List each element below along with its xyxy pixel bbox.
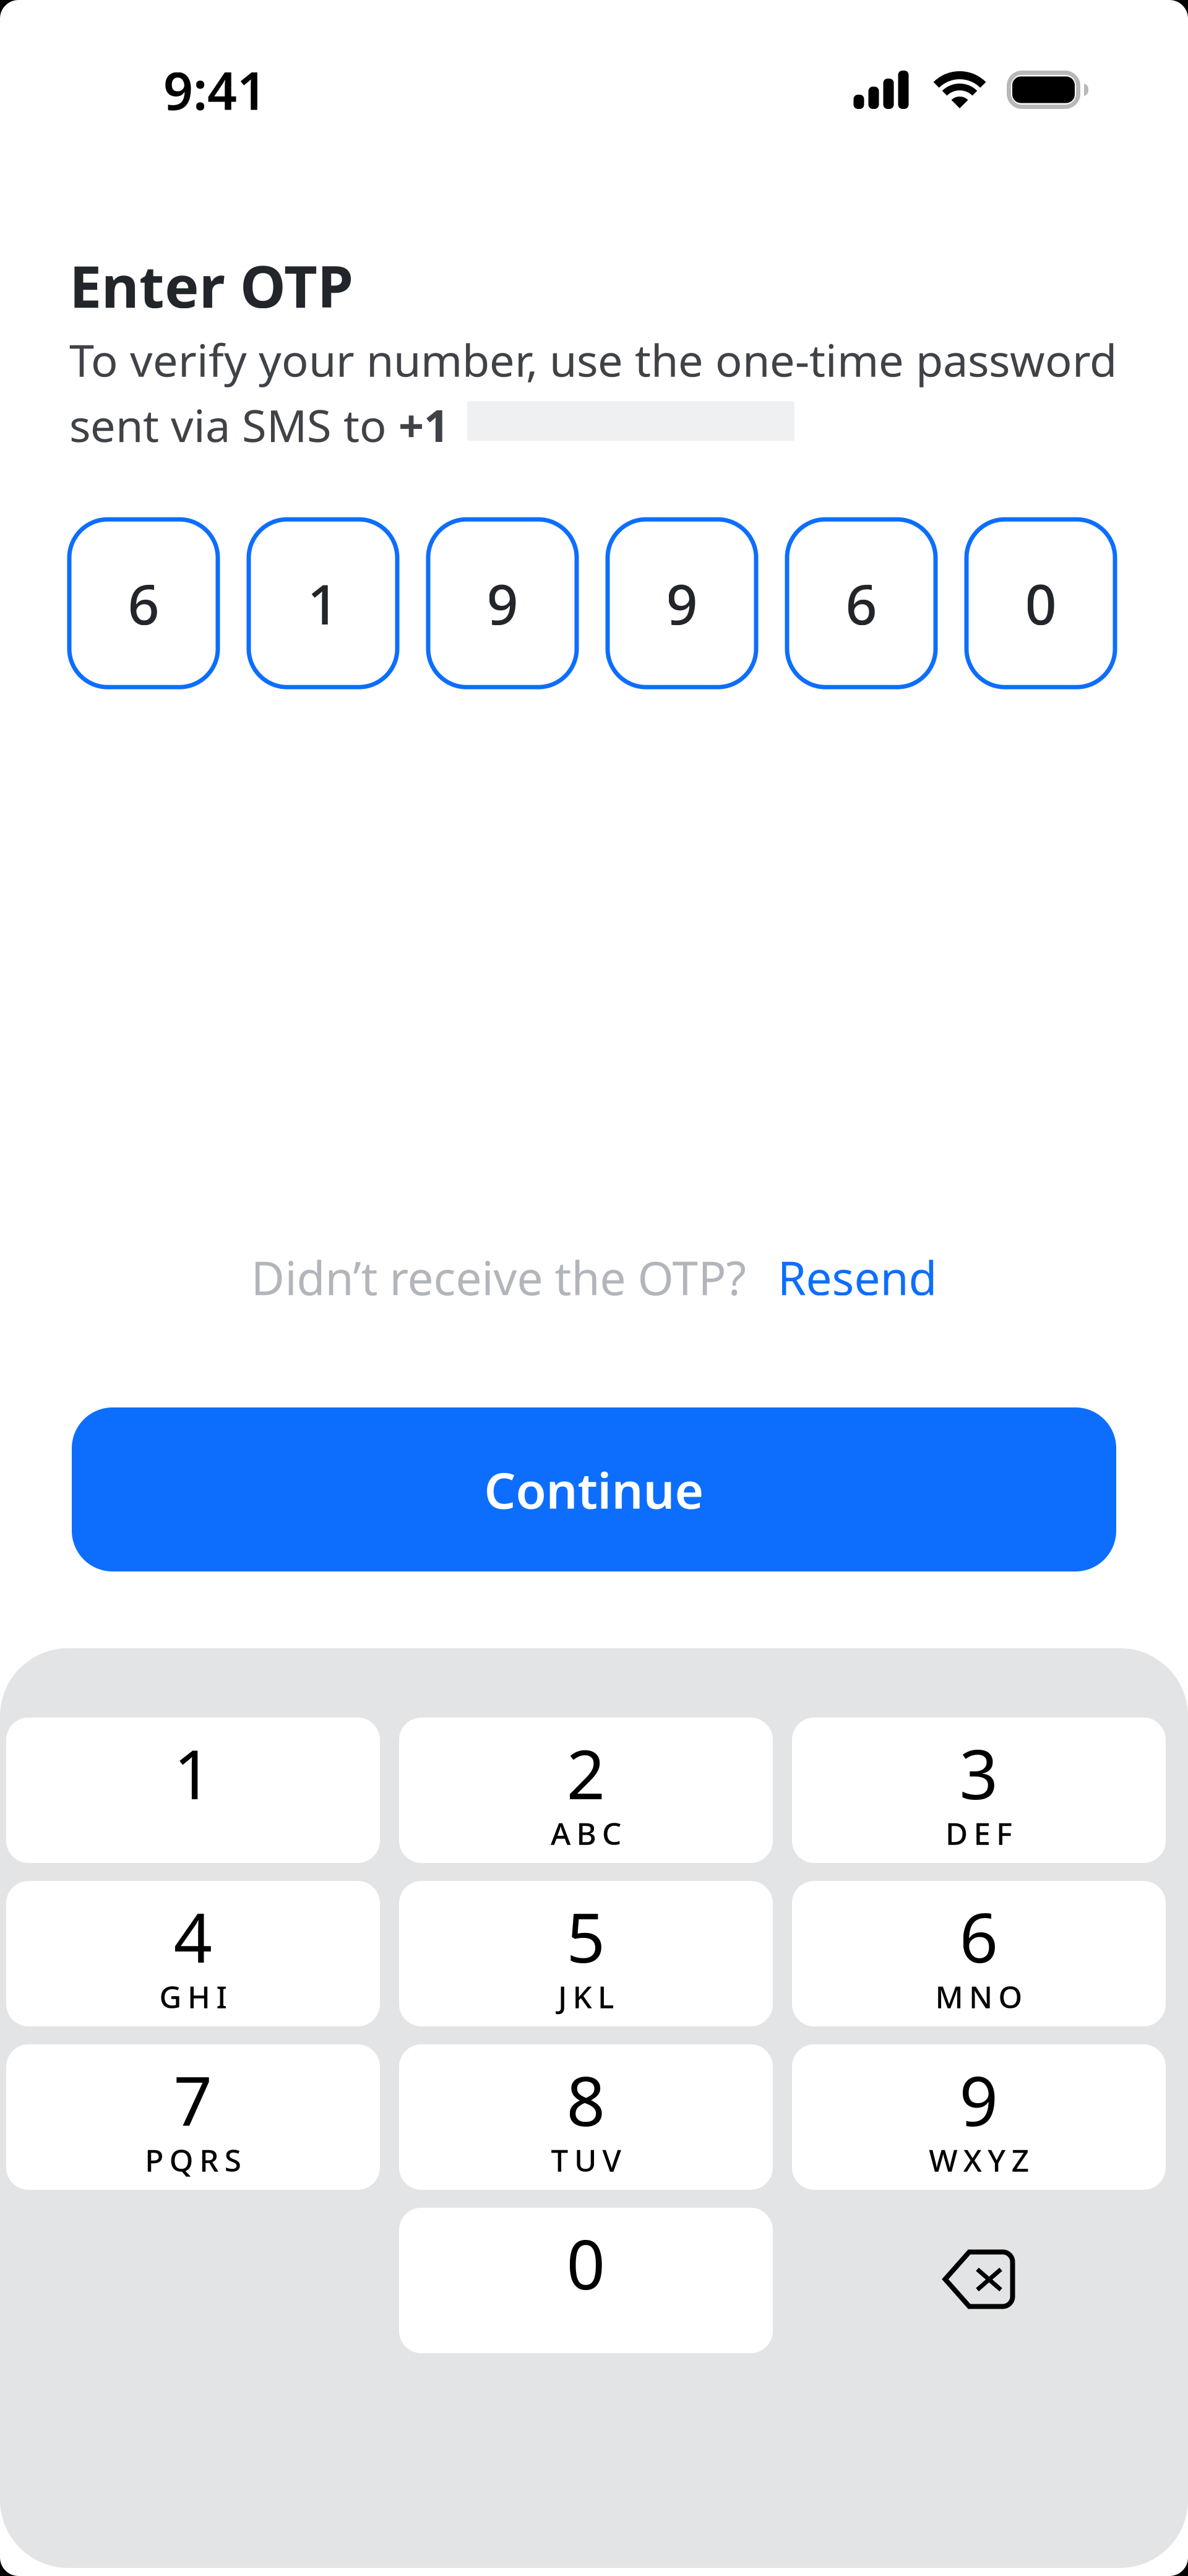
staticText: 7 — [174, 2055, 213, 2145]
staticText: WXYZ — [929, 2139, 1029, 2180]
button[interactable]: 1 — [6, 1718, 380, 1863]
staticText: 9:41 — [163, 55, 267, 124]
staticText: 3 — [959, 1728, 998, 1818]
staticText: sent via SMS to +1 — [69, 395, 449, 454]
staticText: 9 — [487, 567, 518, 640]
staticText: 4 — [174, 1891, 213, 1981]
button[interactable]: 0 — [399, 2208, 773, 2353]
staticText: Resend — [777, 1246, 937, 1308]
staticText: GHI — [159, 1976, 227, 2017]
button[interactable]: Continue — [72, 1407, 1116, 1571]
button[interactable]: 2 — [399, 1718, 773, 1863]
staticText: MNO — [935, 1976, 1022, 2017]
staticText: 1 — [174, 1728, 213, 1818]
staticText: 6 — [959, 1891, 998, 1981]
staticText: 5 — [566, 1891, 605, 1981]
button[interactable]: 4 — [6, 1881, 380, 2026]
staticText: JKL — [558, 1976, 614, 2017]
staticText: 6 — [846, 567, 877, 640]
staticText: DEF — [945, 1813, 1012, 1853]
staticText: 6 — [128, 567, 159, 640]
staticText: 9 — [666, 567, 698, 640]
staticText: ABC — [551, 1813, 621, 1853]
staticText: To verify your number, use the one-time … — [69, 330, 1117, 389]
staticText: Enter OTP — [69, 247, 353, 324]
button[interactable]: 3 — [792, 1718, 1166, 1863]
button[interactable]: 7 — [6, 2044, 380, 2190]
staticText: TUV — [551, 2139, 621, 2180]
staticText: 0 — [1025, 567, 1057, 640]
staticText: 1 — [307, 567, 339, 640]
staticText: PQRS — [145, 2139, 241, 2180]
button[interactable]: Didn’t receive the OTP? — [251, 1239, 937, 1315]
button[interactable]: 6 — [792, 1881, 1166, 2026]
button[interactable]: 5 — [399, 1881, 773, 2026]
staticText: 0 — [566, 2218, 605, 2308]
staticText: 8 — [566, 2055, 605, 2145]
button[interactable]: 8 — [399, 2044, 773, 2190]
staticText: Didn’t receive the OTP? — [251, 1246, 746, 1308]
button[interactable]: Delete — [792, 2208, 1166, 2353]
button[interactable]: 9 — [792, 2044, 1166, 2190]
staticText: Continue — [484, 1457, 704, 1522]
staticText: 9 — [959, 2055, 998, 2145]
staticText: 2 — [566, 1728, 605, 1818]
